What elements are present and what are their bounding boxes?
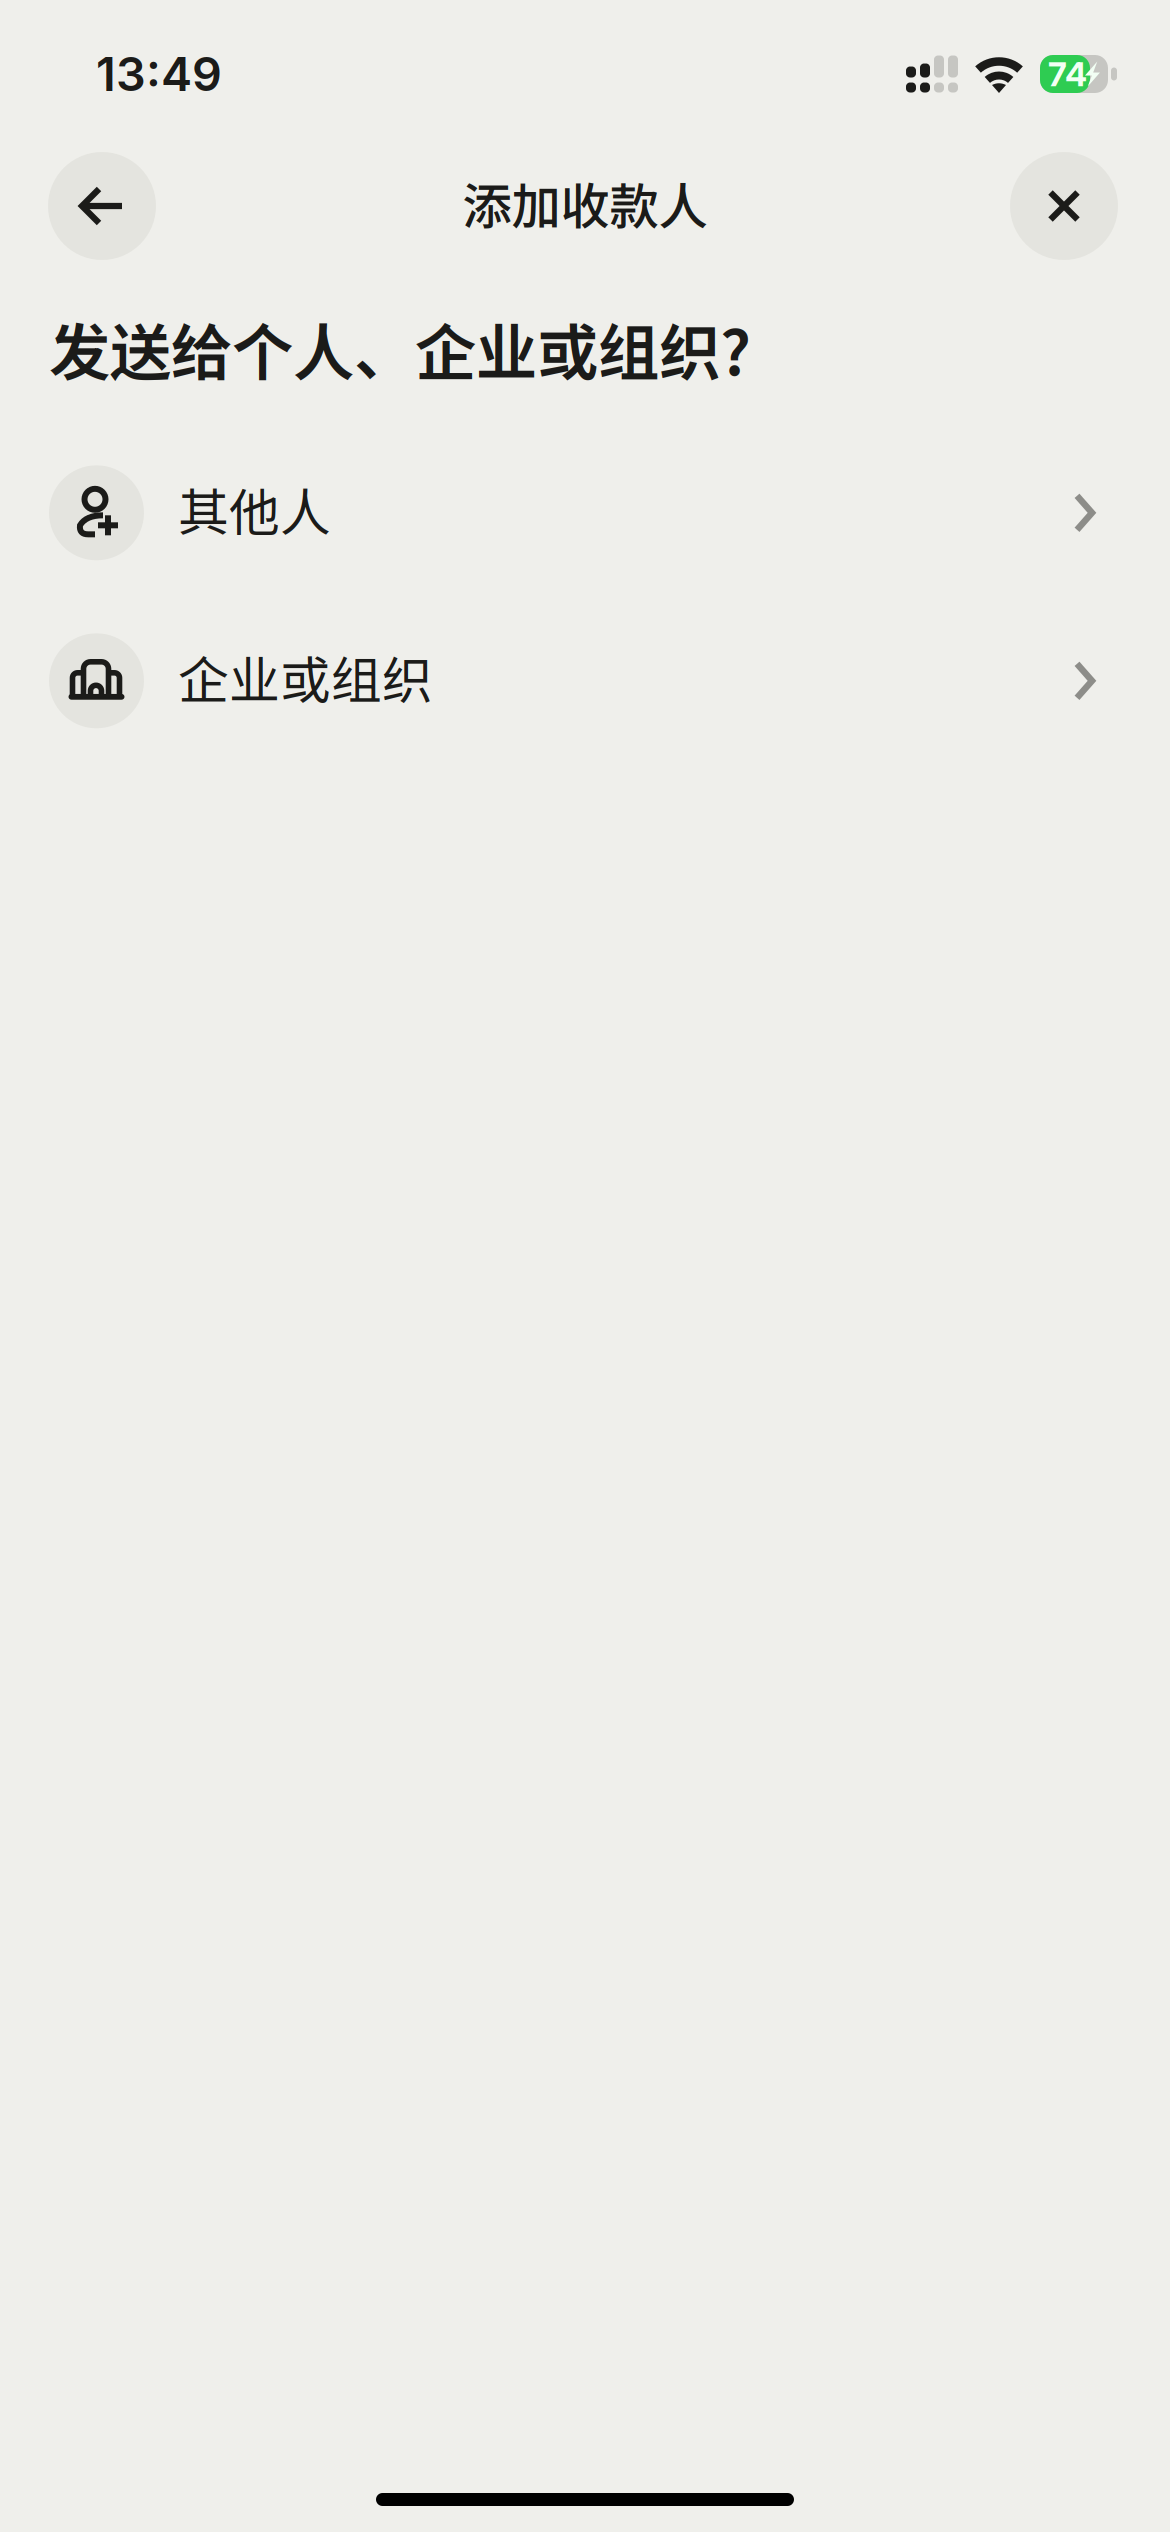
button[interactable]: 其他人 (0, 429, 1170, 597)
staticText: 添加收款人 (462, 167, 707, 239)
staticText: 发送给个人、企业或组织? (49, 304, 751, 393)
button[interactable]: 返回 (48, 152, 156, 260)
staticText: 13:49 (96, 46, 222, 102)
button[interactable]: 企业或组织 (0, 597, 1170, 765)
staticText: 74 (1048, 54, 1087, 94)
staticText: 其他人 (178, 472, 331, 545)
button[interactable]: 关闭 (1010, 152, 1118, 260)
staticText: 企业或组织 (178, 640, 433, 713)
